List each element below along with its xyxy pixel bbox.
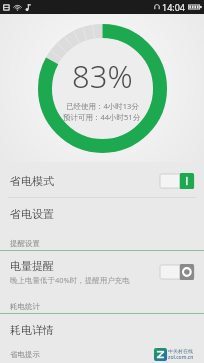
button[interactable]: 耗电详情 — [0, 314, 204, 346]
button[interactable]: 电量提醒 — [0, 251, 204, 293]
staticText: 耗电详情 — [10, 323, 54, 337]
staticText: 省电设置 — [10, 207, 54, 221]
staticText: 提醒设置 — [10, 239, 40, 248]
button[interactable]: 省电设置 — [0, 198, 204, 230]
staticText: 已经使用：4小时13分 — [66, 101, 139, 111]
button[interactable]: 省电模式开关，已开启 — [160, 173, 194, 189]
staticText: 预计可用：44小时51分 — [63, 112, 141, 122]
staticText: 耗电统计 — [10, 302, 40, 311]
button[interactable]: 省电模式 — [0, 164, 204, 197]
staticText: 中关村在线 — [168, 348, 193, 354]
staticText: 14:04 — [162, 1, 186, 13]
staticText: 83% — [72, 55, 133, 97]
staticText: 省电提示 — [10, 350, 40, 359]
button[interactable]: 省电提示 — [0, 346, 204, 363]
staticText: 省电模式 — [10, 174, 54, 188]
staticText: zol.com.cn — [168, 354, 194, 361]
staticText: 晚上电量低于40%时，提醒用户充电 — [10, 275, 130, 285]
button[interactable]: 电量提醒开关，已关闭 — [160, 264, 194, 280]
staticText: 电量提醒 — [10, 259, 54, 273]
